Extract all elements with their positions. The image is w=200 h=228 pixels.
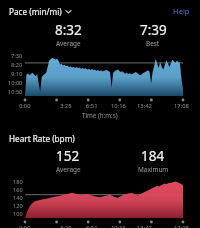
button[interactable]: Pace (min/mi) — [9, 6, 72, 17]
staticText: 152 — [56, 147, 80, 165]
staticText: 180 — [13, 178, 23, 186]
staticText: Average — [56, 165, 81, 174]
staticText: 0:00 — [19, 224, 31, 228]
staticText: 13:42 — [137, 102, 152, 110]
staticText: Average — [56, 39, 81, 48]
staticText: 10:00 — [8, 79, 23, 87]
staticText: 3:25 — [60, 102, 72, 110]
button[interactable]: 7:39 — [118, 21, 188, 48]
staticText: Heart Rate (bpm) — [9, 133, 75, 144]
staticText: 120 — [13, 202, 23, 210]
staticText: 184 — [141, 147, 165, 165]
staticText: 10:16 — [111, 102, 126, 110]
staticText: 10:16 — [111, 224, 126, 228]
button[interactable]: 184 — [118, 147, 188, 174]
staticText: 10:50 — [8, 88, 23, 96]
button[interactable]: Heart Rate (bpm) — [9, 133, 75, 144]
staticText: 9:10 — [11, 70, 23, 78]
staticText: 0:00 — [19, 102, 31, 110]
staticText: 8:20 — [11, 61, 23, 69]
staticText: Time (h:m:s) — [82, 111, 118, 119]
staticText: 100 — [13, 210, 23, 218]
staticText: 140 — [13, 194, 23, 202]
staticText: 17:08 — [174, 102, 189, 110]
staticText: 3:25 — [60, 224, 72, 228]
staticText: Maximum — [138, 165, 169, 174]
staticText: 6:51 — [86, 224, 98, 228]
button[interactable]: Help — [171, 4, 192, 18]
staticText: Help — [173, 6, 190, 16]
staticText: 13:42 — [137, 224, 152, 228]
staticText: Best — [146, 39, 160, 48]
staticText: 17:08 — [174, 224, 189, 228]
button[interactable]: 152 — [18, 147, 118, 174]
staticText: 7:30 — [11, 52, 23, 60]
staticText: 6:51 — [86, 102, 98, 110]
staticText: Pace (min/mi) — [9, 6, 62, 17]
button[interactable]: 8:32 — [18, 21, 118, 48]
staticText: 8:32 — [55, 21, 82, 39]
staticText: 7:39 — [140, 21, 167, 39]
staticText: 160 — [13, 186, 23, 194]
